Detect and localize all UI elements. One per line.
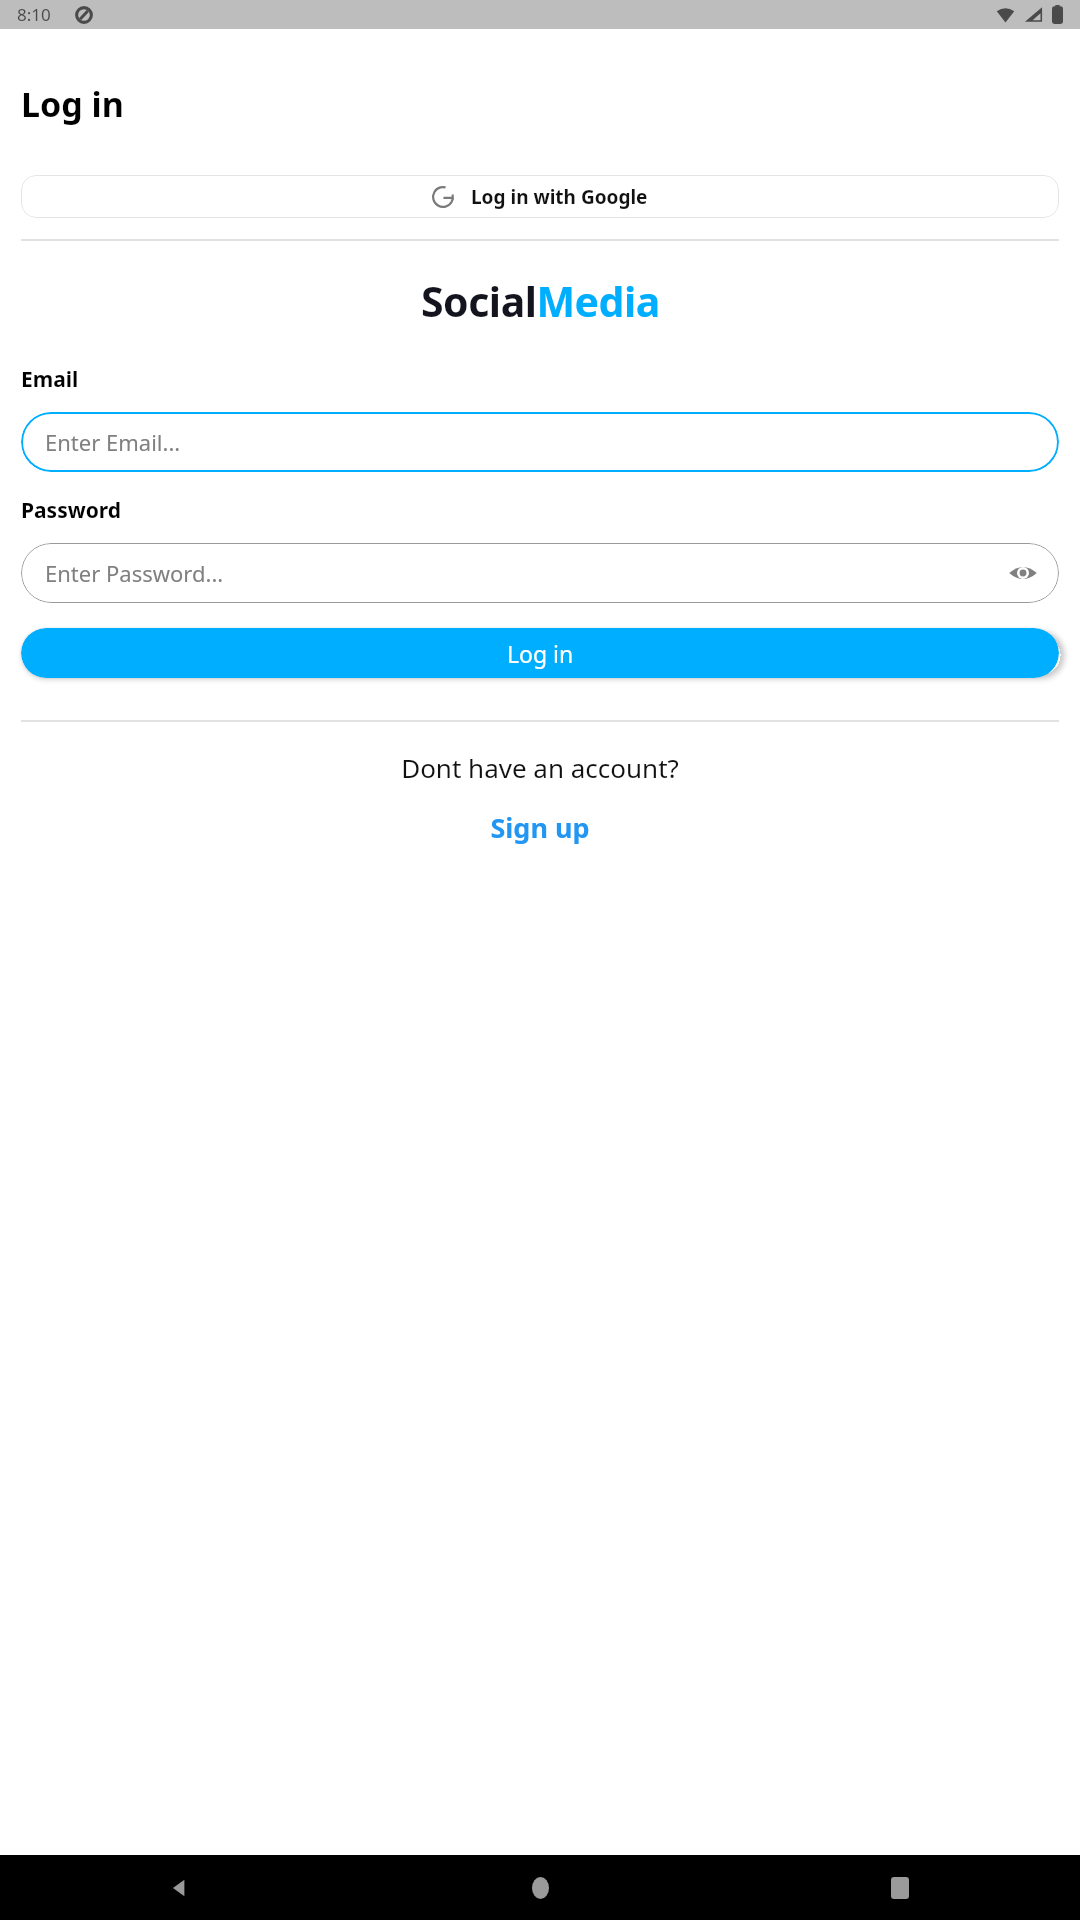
staticText: Email (21, 365, 79, 394)
staticText: Log in (21, 81, 124, 127)
staticText: SocialMedia (421, 273, 660, 329)
button[interactable]: Enter Email... (21, 412, 1059, 472)
staticText: Enter Email... (45, 427, 181, 457)
staticText: Password (21, 496, 122, 525)
button[interactable]: Sign up (480, 805, 600, 850)
button[interactable]: Home (360, 1855, 720, 1920)
button[interactable]: Log in (21, 628, 1059, 678)
staticText: 8:10 (17, 3, 51, 26)
button[interactable]: Enter Password... (21, 543, 1059, 603)
button[interactable]: Back (0, 1855, 360, 1920)
staticText: Enter Password... (45, 558, 224, 588)
staticText: Dont have an account? (0, 750, 1080, 785)
button[interactable]: Show password (1001, 551, 1045, 595)
staticText: Log in with Google (471, 184, 648, 210)
button[interactable]: Recent apps (720, 1855, 1080, 1920)
button[interactable]: Log in with Google (21, 175, 1059, 218)
staticText: Log in (507, 638, 574, 669)
